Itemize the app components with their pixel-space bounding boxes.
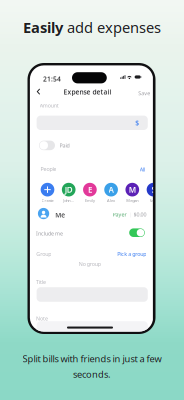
staticText: M (129, 184, 136, 195)
staticText: Save (138, 90, 150, 97)
staticText: Create (41, 198, 53, 203)
staticText: add expenses (67, 17, 161, 37)
staticText: People (40, 165, 56, 172)
staticText: Expense detail (64, 87, 112, 96)
staticText: Emily (85, 198, 95, 203)
staticText: Amount (40, 102, 59, 109)
staticText: Title (36, 278, 46, 285)
staticText: Note (36, 315, 48, 322)
staticText: | (129, 211, 132, 218)
button[interactable]: Include me (129, 228, 145, 237)
button[interactable]: Paid (39, 141, 70, 150)
staticText: Paid (60, 142, 70, 149)
staticText: All (140, 166, 145, 173)
button[interactable]: All (140, 166, 145, 173)
button[interactable]: Back (35, 86, 42, 97)
staticText: No group (79, 260, 101, 267)
staticText: Include me (36, 230, 63, 237)
staticText: 21:54 (43, 74, 61, 83)
staticText: Sam (149, 198, 157, 203)
staticText: JD (65, 184, 73, 195)
staticText: S (151, 184, 155, 195)
staticText: Me (55, 211, 65, 219)
staticText: $0.00 (134, 211, 147, 218)
button[interactable]: Save (137, 88, 152, 98)
staticText: A (109, 184, 114, 195)
staticText: Group (36, 250, 51, 257)
staticText: seconds. (73, 368, 111, 380)
staticText: Payer (113, 211, 127, 218)
staticText: Easily (23, 17, 67, 37)
staticText: Pick a group (117, 250, 146, 257)
staticText: Megan (126, 198, 138, 203)
staticText: Alex (107, 198, 115, 203)
staticText: Split bills with friends in just a few (22, 352, 161, 365)
staticText: $ (135, 118, 139, 127)
staticText: E (88, 184, 92, 195)
staticText: John ... (63, 198, 74, 203)
button[interactable]: Pick a group (117, 250, 146, 257)
